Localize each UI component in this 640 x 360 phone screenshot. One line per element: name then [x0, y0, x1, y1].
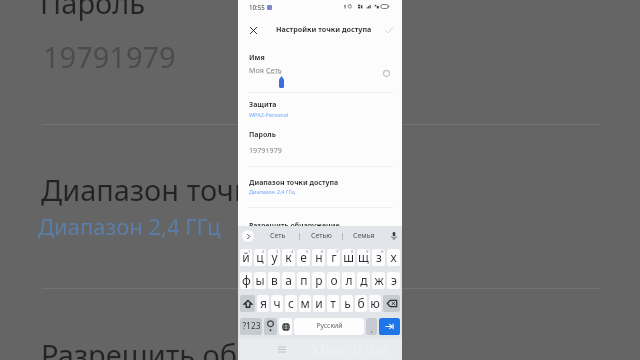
staticText: Настройки точки доступа	[276, 24, 372, 34]
button[interactable]: б	[355, 295, 367, 312]
button[interactable]: Защита	[238, 99, 402, 126]
button[interactable]: л	[342, 272, 355, 289]
staticText: 1	[248, 249, 251, 255]
button[interactable]: Ещё	[238, 226, 257, 246]
button[interactable]: Разрешить обнаружение	[238, 214, 402, 226]
button[interactable]: ?123	[240, 318, 262, 335]
staticText: 4	[291, 249, 294, 255]
staticText: Диапазон точки доступа	[41, 170, 386, 209]
staticText: Диапазон 2,4 ГГц	[249, 188, 295, 195]
button[interactable]: Удалить	[383, 295, 400, 312]
button[interactable]: Shift	[240, 295, 255, 312]
staticText: б	[357, 295, 365, 311]
button[interactable]: н	[312, 249, 325, 266]
button[interactable]: у	[268, 249, 280, 266]
staticText: д	[360, 272, 368, 288]
button[interactable]: р	[312, 272, 325, 289]
staticText: 6	[321, 249, 324, 255]
staticText: ,	[371, 325, 373, 335]
button[interactable]: а	[282, 272, 295, 289]
staticText: п	[300, 272, 308, 288]
button[interactable]: Меню	[275, 343, 289, 355]
button[interactable]: к	[282, 249, 295, 266]
staticText: щ	[358, 249, 369, 265]
button[interactable]: в	[268, 272, 280, 289]
button[interactable]: п	[297, 272, 310, 289]
staticText: а	[285, 272, 292, 288]
staticText: Сеть	[270, 231, 286, 241]
staticText: ф	[242, 272, 251, 288]
staticText: Сетью	[311, 231, 332, 241]
staticText: Диапазон 2,4 ГГц	[38, 211, 221, 241]
button[interactable]: я	[257, 295, 269, 312]
staticText: т	[330, 295, 336, 311]
button[interactable]: д	[357, 272, 370, 289]
staticText: к	[285, 249, 292, 265]
button[interactable]: Диапазон точки доступа	[238, 174, 402, 206]
button[interactable]: ы	[254, 272, 266, 289]
staticText: й	[242, 249, 250, 265]
staticText: и	[315, 295, 323, 311]
button[interactable]: Сетью	[300, 226, 342, 246]
button[interactable]: Сменить язык	[279, 318, 292, 335]
staticText: з	[376, 249, 382, 265]
staticText: Пароль	[40, 0, 146, 22]
staticText: г	[331, 249, 337, 265]
staticText: Сеть	[266, 65, 282, 75]
button[interactable]: с	[285, 295, 297, 312]
button[interactable]: Семья	[343, 226, 385, 246]
button[interactable]: ь	[341, 295, 353, 312]
button[interactable]: е	[297, 249, 310, 266]
staticText: ?123	[242, 320, 261, 331]
button[interactable]: й	[240, 249, 252, 266]
button[interactable]: Очистить	[380, 67, 393, 80]
button[interactable]: Имя	[238, 48, 402, 92]
staticText: ш	[343, 249, 354, 265]
button[interactable]: ж	[372, 272, 385, 289]
button[interactable]: ш	[342, 249, 355, 266]
staticText: я	[260, 295, 267, 311]
staticText: в	[271, 272, 278, 288]
button[interactable]: и	[313, 295, 325, 312]
button[interactable]: Русский	[294, 318, 364, 335]
button[interactable]: Голосовой ввод	[385, 226, 402, 246]
button[interactable]: Пароль	[238, 129, 402, 166]
staticText: 10:55	[249, 3, 265, 11]
button[interactable]: ц	[254, 249, 266, 266]
button[interactable]: э	[387, 272, 400, 289]
staticText: р	[315, 272, 323, 288]
button[interactable]: ч	[271, 295, 283, 312]
staticText: Имя	[249, 53, 265, 63]
button[interactable]: Сеть	[257, 226, 299, 246]
button[interactable]: ф	[240, 272, 252, 289]
staticText: х	[390, 249, 397, 265]
button[interactable]: ю	[369, 295, 381, 312]
staticText: у	[271, 249, 278, 265]
button[interactable]: з	[372, 249, 385, 266]
button[interactable]: г	[327, 249, 340, 266]
button[interactable]: щ	[357, 249, 370, 266]
staticText: ь	[344, 295, 351, 311]
staticText: WPA2-Personal	[249, 111, 289, 118]
staticText: о	[330, 272, 338, 288]
button[interactable]: Закрыть	[243, 20, 263, 40]
button[interactable]: о	[327, 272, 340, 289]
staticText: Русский	[316, 321, 343, 330]
staticText: Защита	[249, 100, 277, 110]
staticText: 0	[381, 249, 384, 255]
button[interactable]: Запятая	[366, 318, 377, 335]
staticText: 19791979	[249, 145, 282, 155]
button[interactable]: х	[387, 249, 400, 266]
button[interactable]: Эмодзи	[264, 318, 277, 335]
staticText: Разрешить обнаружение	[41, 335, 392, 360]
button[interactable]: Готово	[380, 21, 398, 39]
staticText: м	[300, 295, 310, 311]
button[interactable]: м	[299, 295, 311, 312]
staticText: л	[345, 272, 353, 288]
staticText: э	[391, 272, 397, 288]
staticText: Семья	[353, 231, 375, 241]
staticText: ц	[256, 249, 264, 265]
button[interactable]: Ввод	[379, 318, 400, 335]
button[interactable]: т	[327, 295, 339, 312]
